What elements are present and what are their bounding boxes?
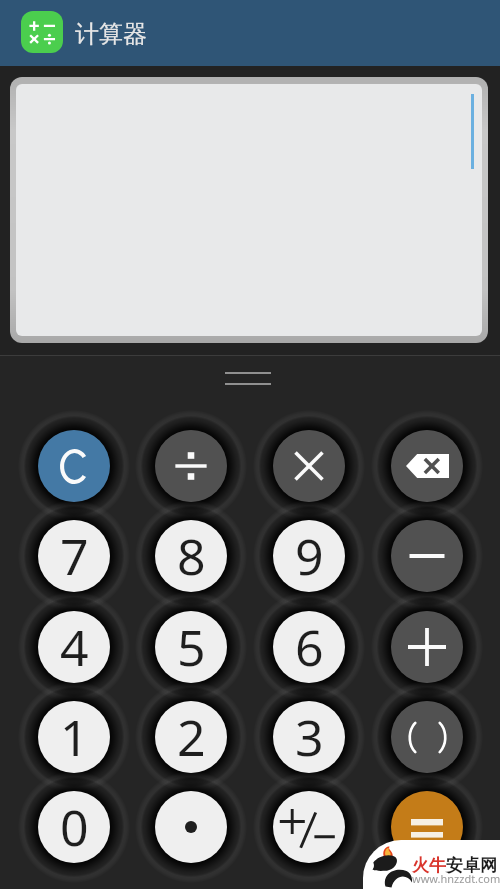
staticText: 6 <box>295 613 324 681</box>
button[interactable]: Calculator icon <box>21 11 63 53</box>
staticText: 2 <box>177 703 206 771</box>
staticText: 1 <box>60 703 89 771</box>
button[interactable]: 1 <box>38 701 110 773</box>
button[interactable]: Backspace <box>391 430 463 502</box>
button[interactable]: 4 <box>38 611 110 683</box>
button[interactable]: 7 <box>38 520 110 592</box>
button[interactable]: 6 <box>273 611 345 683</box>
staticText: 9 <box>295 522 324 590</box>
staticText: 8 <box>177 522 206 590</box>
button[interactable]: 9 <box>273 520 345 592</box>
button[interactable]: Plus <box>391 611 463 683</box>
button[interactable]: 3 <box>273 701 345 773</box>
staticText: 安卓网 <box>446 855 497 876</box>
button[interactable]: Multiply <box>273 430 345 502</box>
staticText: 5 <box>177 613 206 681</box>
staticText: 4 <box>60 613 89 681</box>
button[interactable]: Parentheses <box>391 701 463 773</box>
button[interactable]: 2 <box>155 701 227 773</box>
button[interactable]: Plus minus <box>273 791 345 863</box>
staticText: 3 <box>295 703 324 771</box>
button[interactable]: 8 <box>155 520 227 592</box>
staticText: www.hnzzdt.com <box>412 871 500 886</box>
button[interactable]: Divide <box>155 430 227 502</box>
staticText: 火牛 <box>412 855 446 876</box>
button[interactable]: 0 <box>38 791 110 863</box>
button[interactable]: Equals <box>391 791 463 863</box>
staticText: 7 <box>60 522 89 590</box>
button[interactable]: 5 <box>155 611 227 683</box>
button[interactable]: C <box>38 430 110 502</box>
staticText: 计算器 <box>75 19 147 49</box>
button[interactable]: Decimal point <box>155 791 227 863</box>
staticText: 0 <box>60 793 89 861</box>
button[interactable]: Minus <box>391 520 463 592</box>
